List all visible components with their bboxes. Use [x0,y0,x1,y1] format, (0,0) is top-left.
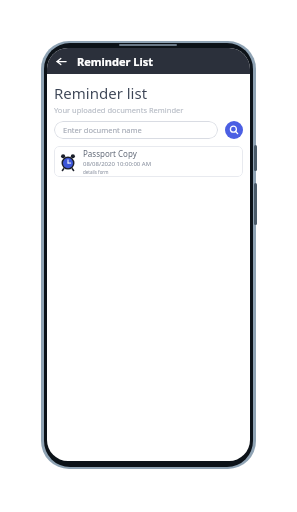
staticText: Reminder list [54,83,148,103]
button[interactable]: Back [51,51,71,71]
staticText: 08/08/2020 10:00:00 AM [83,160,152,168]
staticText: Reminder List [77,54,153,69]
staticText: details form [83,169,109,175]
button[interactable]: Passport Copy [54,146,243,177]
staticText: Your uploaded documents Reminder [54,105,184,115]
button[interactable]: Enter document name [54,121,218,139]
button[interactable]: Search [225,121,243,139]
staticText: Enter document name [63,125,142,135]
staticText: Passport Copy [83,148,137,159]
